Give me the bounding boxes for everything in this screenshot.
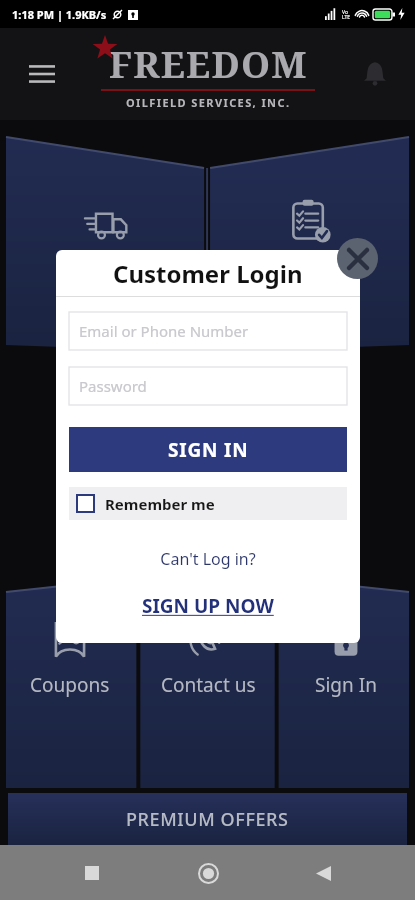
button[interactable]: Contact us bbox=[139, 590, 277, 788]
staticText: FREEDOM bbox=[109, 38, 308, 88]
button[interactable]: Notifications bbox=[353, 52, 397, 96]
button[interactable]: Services bbox=[6, 150, 206, 342]
button[interactable]: SIGN IN bbox=[69, 427, 347, 472]
staticText: 1:18 PM | 1.9KB/s bbox=[12, 7, 107, 22]
staticText: Can't Log in? bbox=[160, 548, 256, 570]
button[interactable]: Sign In bbox=[277, 590, 415, 788]
staticText: History bbox=[277, 258, 341, 284]
button[interactable]: PREMIUM OFFERS bbox=[8, 793, 407, 845]
button[interactable]: SIGN UP NOW bbox=[138, 589, 278, 623]
button[interactable]: Email or Phone Number bbox=[69, 312, 347, 350]
button[interactable]: Home bbox=[184, 849, 232, 897]
staticText: Customer Login bbox=[113, 257, 303, 290]
button[interactable]: Can't Log in? bbox=[156, 544, 260, 574]
staticText: Remember me bbox=[105, 494, 215, 514]
button[interactable]: Password bbox=[69, 367, 347, 405]
staticText: SIGN UP NOW bbox=[142, 593, 274, 619]
staticText: Email or Phone Number bbox=[79, 321, 249, 341]
button[interactable]: Recents bbox=[68, 849, 116, 897]
staticText: PREMIUM OFFERS bbox=[126, 807, 289, 832]
button[interactable]: Coupons bbox=[0, 590, 139, 788]
staticText: Contact us bbox=[161, 672, 256, 698]
button[interactable]: History bbox=[209, 150, 409, 342]
staticText: Sign In bbox=[315, 672, 377, 698]
staticText: OILFIELD SERVICES, INC. bbox=[126, 95, 291, 110]
staticText: Services bbox=[70, 260, 143, 286]
staticText: Vo LTE bbox=[342, 9, 351, 20]
button[interactable]: Remember me bbox=[69, 487, 347, 520]
button[interactable]: Menu bbox=[20, 52, 64, 96]
button[interactable]: Close bbox=[337, 238, 378, 279]
staticText: Password bbox=[79, 376, 147, 396]
staticText: SIGN IN bbox=[168, 437, 249, 463]
staticText: Coupons bbox=[30, 672, 110, 698]
button[interactable]: Back bbox=[299, 849, 347, 897]
